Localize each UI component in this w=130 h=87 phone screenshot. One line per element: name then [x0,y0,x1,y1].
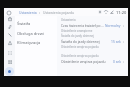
staticText: › [123,59,125,63]
staticText: Oświetlenie zewnętrzne [61,29,93,33]
staticText: Oświetlenie wnętrza pojazdu [61,59,113,63]
button[interactable]: Assistant [4,65,15,77]
button[interactable]: Światła [15,19,57,27]
staticText: Normalny [105,23,121,27]
staticText: › [123,39,125,43]
button[interactable]: Home [4,15,15,23]
other: Signal [110,10,114,14]
staticText: 11:20 [116,10,127,15]
staticText: Światła [17,21,31,26]
button[interactable]: Menu [5,9,12,16]
staticText: Czas świecenia świateł po wyjściu [61,23,105,27]
other: Wifi [104,10,108,14]
button[interactable]: Oświetlenie wnętrza pojazdu [57,58,128,64]
button[interactable]: Media [4,23,15,31]
staticText: 0 sek [113,59,121,63]
staticText: Światła do jazdy dziennej [61,34,94,38]
staticText: › [39,10,41,15]
staticText: › [123,23,125,27]
button[interactable]: Światła do jazdy dziennej [57,38,128,44]
staticText: Klimatyzacja [17,40,41,45]
staticText: Oświetlenie wnętrza pojazdu [61,54,99,58]
staticText: Ustawienia pojazdu [43,10,75,15]
button[interactable]: Navigation [4,39,15,47]
staticText: Światła do jazdy dziennej [61,39,111,43]
button[interactable]: Klimatyzacja [15,38,57,46]
staticText: Oświetlenie wnętrza pojazdu [61,45,99,49]
staticText: 15 sek [111,39,121,43]
other: Bluetooth [98,10,102,14]
button[interactable]: Obsługa drzwi [15,29,57,37]
staticText: Obsługa drzwi [17,31,44,36]
button[interactable]: Settings [4,58,15,66]
button[interactable]: Ustawienia [19,10,37,15]
button[interactable]: Czas świecenia świateł po wyjściu [57,22,128,28]
button[interactable]: Apps [4,49,15,57]
staticText: Ustawienia [61,18,76,22]
button[interactable]: Phone [4,31,15,39]
